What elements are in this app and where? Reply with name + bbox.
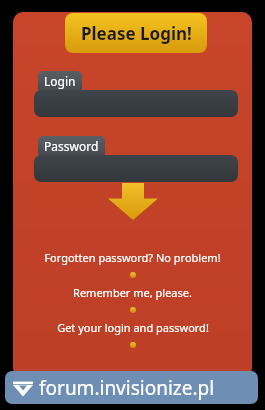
staticText: Login <box>44 73 76 89</box>
button[interactable]: Invisionize logo <box>5 371 258 404</box>
button[interactable]: Password input <box>34 155 238 182</box>
staticText: Please Login! <box>81 22 192 45</box>
button[interactable]: Please Login! <box>65 13 207 53</box>
staticText: Get your login and password! <box>57 320 209 335</box>
other: Invisionize logo <box>13 378 33 398</box>
staticText: Forgotten password? No problem! <box>44 250 221 265</box>
button[interactable]: Get your login and password! <box>13 318 252 337</box>
staticText: Password <box>44 138 99 154</box>
button[interactable]: Remember me, please. <box>13 283 252 302</box>
staticText: forum.invisionize.pl <box>39 375 215 401</box>
button[interactable]: Login input <box>34 90 238 117</box>
button[interactable]: Forgotten password? No problem! <box>13 248 252 267</box>
staticText: Remember me, please. <box>73 285 192 300</box>
